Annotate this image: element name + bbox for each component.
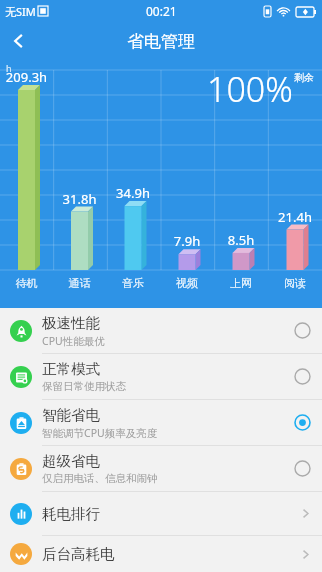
staticText: 7.9h xyxy=(160,232,214,250)
staticText: 00:21 xyxy=(146,3,177,19)
button[interactable]: Back xyxy=(0,22,38,60)
staticText: 通话 xyxy=(53,276,106,290)
staticText: 后台高耗电 xyxy=(42,545,288,563)
staticText: 100% xyxy=(207,66,293,112)
button[interactable]: 正常模式 xyxy=(0,354,322,399)
staticText: 待机 xyxy=(0,276,53,290)
staticText: 正常模式 xyxy=(42,360,100,378)
button[interactable]: 极速性能 xyxy=(0,308,322,353)
staticText: 21.4h xyxy=(268,208,322,226)
staticText: 极速性能 xyxy=(42,314,100,332)
staticText: 仅启用电话、信息和闹钟 xyxy=(42,472,158,485)
staticText: 智能调节CPU频率及亮度 xyxy=(42,426,158,440)
button[interactable]: 智能省电 xyxy=(0,400,322,445)
staticText: 31.8h xyxy=(53,190,106,208)
button[interactable]: 耗电排行 xyxy=(0,492,322,535)
staticText: 剩余 xyxy=(294,71,314,84)
button[interactable]: 超级省电 xyxy=(0,446,322,491)
staticText: 耗电排行 xyxy=(42,505,288,523)
staticText: 保留日常使用状态 xyxy=(42,380,126,393)
staticText: 省电管理 xyxy=(127,31,195,52)
staticText: CPU性能最优 xyxy=(42,334,105,348)
staticText: 智能省电 xyxy=(42,406,100,424)
staticText: 上网 xyxy=(214,276,268,290)
staticText: 8.5h xyxy=(214,231,268,249)
staticText: 阅读 xyxy=(268,276,322,290)
staticText: 209.3h xyxy=(0,68,53,86)
staticText: 音乐 xyxy=(106,276,160,290)
staticText: h xyxy=(6,62,12,74)
staticText: 34.9h xyxy=(106,184,160,202)
button[interactable]: 后台高耗电 xyxy=(0,536,322,572)
staticText: 视频 xyxy=(160,276,214,290)
staticText: 超级省电 xyxy=(42,452,100,470)
staticText: 无SIM xyxy=(5,4,36,19)
